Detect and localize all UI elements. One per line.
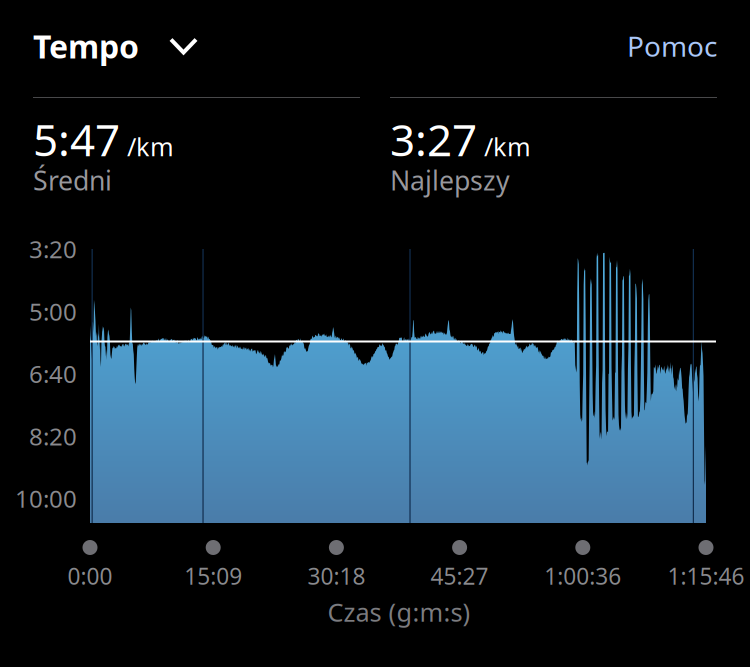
staticText: 45:27 <box>431 561 489 591</box>
staticText: /km <box>484 130 531 163</box>
staticText: 6:40 <box>29 358 77 390</box>
staticText: 5:47 <box>33 110 120 168</box>
staticText: 15:09 <box>184 561 242 591</box>
staticText: 1:15:46 <box>667 561 744 591</box>
staticText: Czas (g:m:s) <box>327 595 470 629</box>
staticText: /km <box>127 130 174 163</box>
staticText: 8:20 <box>29 420 77 452</box>
button[interactable]: Pomoc <box>627 27 717 65</box>
staticText: Pomoc <box>627 27 717 65</box>
staticText: 5:00 <box>29 295 77 327</box>
staticText: 0:00 <box>67 561 112 591</box>
staticText: 3:20 <box>29 233 77 265</box>
button[interactable]: Tempo <box>33 25 196 67</box>
staticText: Najlepszy <box>390 162 510 198</box>
staticText: 3:27 <box>390 110 477 168</box>
staticText: 30:18 <box>307 561 365 591</box>
staticText: 10:00 <box>15 483 77 514</box>
staticText: Tempo <box>33 25 139 67</box>
staticText: Średni <box>33 162 112 198</box>
staticText: 1:00:36 <box>544 561 621 591</box>
